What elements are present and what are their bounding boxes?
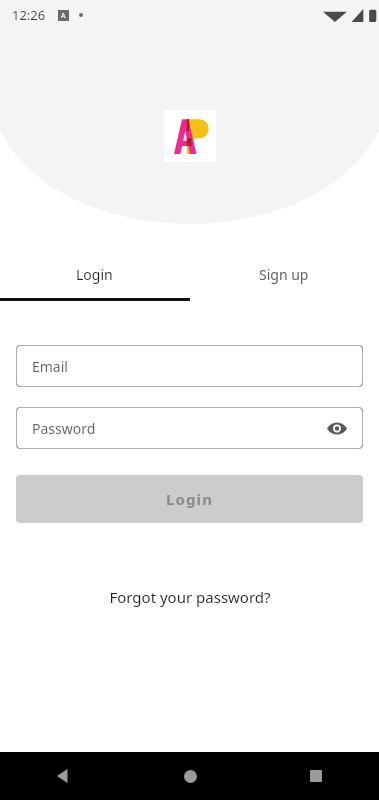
staticText: Email	[32, 357, 68, 376]
button[interactable]: Email	[16, 345, 363, 387]
button[interactable]: Forgot your password?	[0, 579, 379, 615]
other: App logo	[164, 110, 216, 162]
staticText: Login	[76, 265, 113, 284]
staticText: A	[61, 11, 66, 21]
button[interactable]: Sign up	[189, 250, 379, 298]
button[interactable]: Recent apps	[253, 752, 379, 800]
button[interactable]: Password	[16, 407, 363, 449]
staticText: Sign up	[259, 265, 309, 284]
staticText: Login	[166, 489, 213, 509]
button[interactable]: Login	[0, 250, 189, 298]
button[interactable]: Home	[127, 752, 253, 800]
button[interactable]: Show password	[325, 416, 349, 440]
button[interactable]: Back	[0, 752, 127, 800]
staticText: Forgot your password?	[109, 587, 271, 607]
button[interactable]: Login	[16, 475, 363, 523]
staticText: Password	[32, 419, 96, 438]
staticText: 12:26	[12, 6, 46, 24]
